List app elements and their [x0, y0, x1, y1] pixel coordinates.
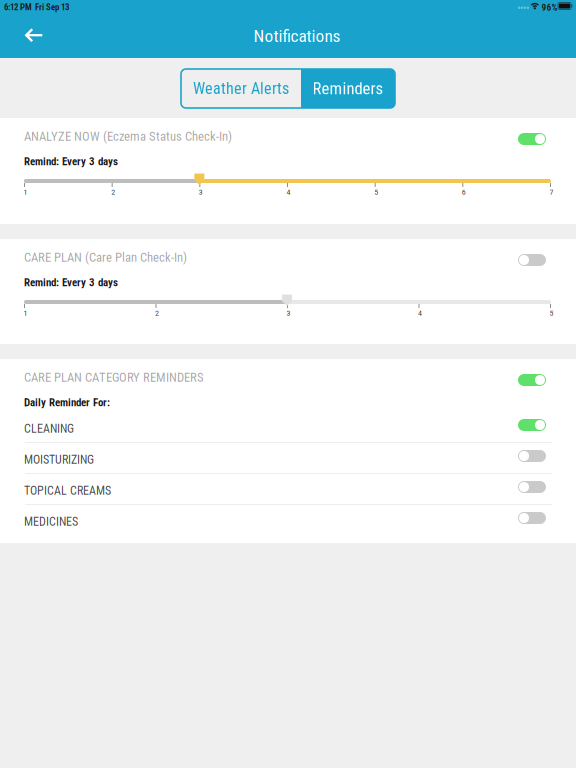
staticText: MOISTURIZING: [24, 453, 94, 467]
staticText: MEDICINES: [24, 515, 78, 529]
button[interactable]: TOPICAL CREAMS: [0, 474, 576, 505]
staticText: ANALYZE NOW (Eczema Status Check-In): [24, 129, 232, 144]
staticText: 7: [549, 187, 553, 197]
staticText: CARE PLAN (Care Plan Check-In): [24, 250, 187, 265]
staticText: 1: [23, 187, 27, 197]
button[interactable]: Enable CARE PLAN (Care Plan Check-In): [512, 248, 552, 272]
staticText: Notifications: [253, 26, 340, 46]
staticText: CLEANING: [24, 422, 74, 436]
button[interactable]: Toggle all care plan category reminders: [512, 368, 552, 392]
staticText: 1: [23, 308, 27, 318]
staticText: Fri Sep 13: [35, 2, 69, 12]
staticText: 6: [462, 187, 466, 197]
button[interactable]: Back: [2, 20, 46, 58]
staticText: Weather Alerts: [193, 79, 289, 98]
staticText: Remind: Every 3 days: [24, 276, 118, 289]
button[interactable]: CLEANING: [0, 412, 576, 443]
button[interactable]: Reminders: [301, 69, 395, 108]
staticText: 96%: [541, 2, 557, 13]
staticText: TOPICAL CREAMS: [24, 484, 111, 498]
staticText: 2: [155, 308, 159, 318]
staticText: 6:12 PM: [4, 2, 32, 12]
button[interactable]: Weather Alerts: [181, 69, 301, 108]
staticText: 5: [549, 308, 553, 318]
button[interactable]: Disable ANALYZE NOW (Eczema Status Check…: [512, 127, 552, 151]
staticText: 5: [374, 187, 378, 197]
staticText: 4: [418, 308, 422, 318]
staticText: 4: [286, 187, 290, 197]
button[interactable]: MOISTURIZING: [0, 443, 576, 474]
staticText: 3: [199, 187, 203, 197]
staticText: 2: [111, 187, 115, 197]
button[interactable]: MEDICINES: [0, 505, 576, 536]
staticText: Daily Reminder For:: [24, 396, 110, 409]
staticText: 3: [286, 308, 290, 318]
staticText: CARE PLAN CATEGORY REMINDERS: [24, 370, 204, 385]
staticText: Reminders: [312, 79, 383, 98]
staticText: Remind: Every 3 days: [24, 155, 118, 168]
